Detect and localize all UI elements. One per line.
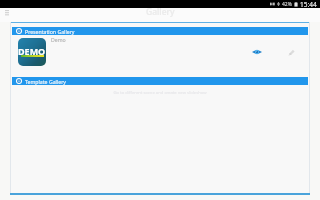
button[interactable]: Template Gallery xyxy=(12,77,308,85)
staticText: 42% xyxy=(282,1,292,8)
button[interactable]: DEMO xyxy=(10,35,310,77)
button[interactable]: Edit presentation xyxy=(285,46,297,58)
staticText: Go to different scene and create new sli… xyxy=(10,90,310,96)
staticText: Template Gallery xyxy=(25,78,66,85)
staticText: Gallery xyxy=(146,6,175,18)
button[interactable]: Presentation Gallery xyxy=(12,27,308,35)
staticText: Presentation Gallery xyxy=(25,28,75,35)
staticText: DEMO xyxy=(18,45,46,57)
staticText: Demo xyxy=(51,36,66,43)
button[interactable]: Open navigation menu xyxy=(2,8,11,17)
staticText: 15:44 xyxy=(300,0,317,8)
button[interactable]: Preview presentation xyxy=(250,45,264,59)
